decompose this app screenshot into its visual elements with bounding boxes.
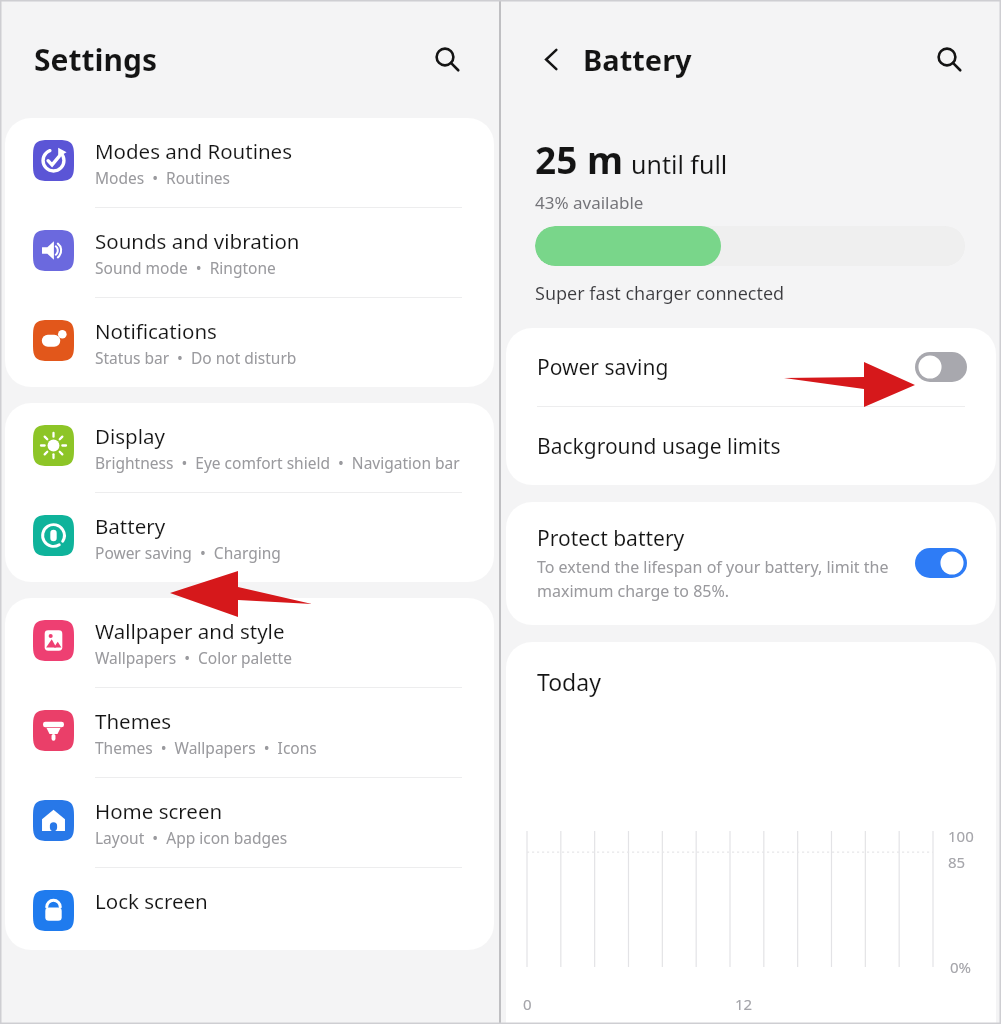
button[interactable]: Protect battery <box>506 502 996 625</box>
staticText: Status bar • Do not disturb <box>95 347 297 368</box>
staticText: Super fast charger connected <box>535 281 785 306</box>
staticText: 0% <box>950 957 972 977</box>
staticText: Sound mode • Ringtone <box>95 257 276 278</box>
button[interactable]: Back <box>531 39 571 79</box>
staticText: 85 <box>948 852 966 872</box>
button[interactable]: Home screen <box>5 778 494 868</box>
staticText: To extend the lifespan of your battery, … <box>537 556 895 602</box>
staticText: Settings <box>34 39 423 80</box>
staticText: Background usage limits <box>537 432 781 461</box>
button[interactable]: Battery <box>5 493 494 582</box>
staticText: Sounds and vibration <box>95 227 300 255</box>
staticText: Themes • Wallpapers • Icons <box>95 737 317 758</box>
staticText: 25 m <box>535 134 624 184</box>
staticText: Today <box>537 666 601 697</box>
staticText: Battery <box>583 40 925 79</box>
staticText: Themes <box>95 707 172 735</box>
staticText: Lock screen <box>95 887 208 915</box>
button[interactable]: Modes and Routines <box>5 118 494 208</box>
staticText: 43% available <box>535 191 644 214</box>
staticText: Home screen <box>95 797 223 825</box>
button[interactable]: Background usage limits <box>506 407 996 485</box>
button[interactable]: Sounds and vibration <box>5 208 494 298</box>
button[interactable]: Wallpaper and style <box>5 598 494 688</box>
button[interactable]: Display <box>5 403 494 493</box>
button[interactable]: Lock screen <box>5 868 494 950</box>
staticText: Modes • Routines <box>95 167 231 188</box>
staticText: Protect battery <box>537 524 685 553</box>
staticText: Notifications <box>95 317 217 345</box>
button[interactable]: Power saving <box>506 328 996 406</box>
button[interactable]: Themes <box>5 688 494 778</box>
staticText: Brightness • Eye comfort shield • Naviga… <box>95 452 460 473</box>
staticText: 12 <box>735 994 753 1014</box>
staticText: until full <box>631 147 728 181</box>
staticText: Power saving <box>537 353 915 382</box>
button[interactable]: Search <box>423 35 471 83</box>
button[interactable]: Toggle off <box>915 352 967 382</box>
staticText: Display <box>95 422 165 450</box>
staticText: Wallpapers • Color palette <box>95 647 292 668</box>
button[interactable]: Notifications <box>5 298 494 387</box>
staticText: Battery <box>95 512 166 540</box>
staticText: Wallpaper and style <box>95 617 285 645</box>
staticText: Modes and Routines <box>95 137 292 165</box>
staticText: 100 <box>948 826 974 846</box>
staticText: 0 <box>523 994 532 1014</box>
button[interactable]: Toggle on <box>915 548 967 578</box>
staticText: Power saving • Charging <box>95 542 281 563</box>
staticText: Layout • App icon badges <box>95 827 288 848</box>
button[interactable]: Search <box>925 35 973 83</box>
